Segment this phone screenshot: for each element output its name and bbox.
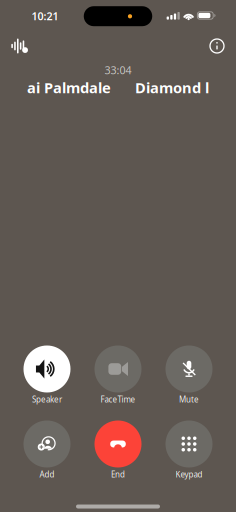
button[interactable]: Speaker (12, 345, 82, 406)
button[interactable]: Call details (204, 33, 230, 59)
button[interactable]: FaceTime (83, 345, 153, 406)
button[interactable]: Audio source (7, 33, 33, 59)
staticText: Add (39, 469, 54, 480)
staticText: Keypad (175, 469, 202, 480)
button[interactable]: Keypad (154, 420, 224, 481)
staticText: FaceTime (100, 394, 135, 405)
staticText: Speaker (32, 394, 62, 405)
button[interactable]: End (83, 420, 153, 481)
button[interactable]: Mute (154, 345, 224, 406)
staticText: 10:21 (31, 9, 58, 23)
staticText: ai Palmdale (27, 78, 111, 97)
button[interactable]: Add (12, 420, 82, 481)
staticText: 33:04 (104, 63, 131, 77)
staticText: Mute (179, 394, 199, 405)
staticText: End (111, 469, 125, 480)
staticText: Diamond l (135, 78, 209, 97)
